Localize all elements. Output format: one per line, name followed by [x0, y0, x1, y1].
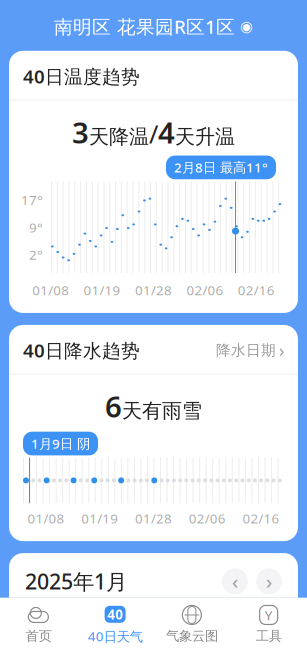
staticText: 2° [29, 246, 43, 263]
button[interactable]: 今天 [134, 641, 173, 651]
staticText: 3 [72, 113, 89, 152]
staticText: › [266, 568, 272, 595]
button[interactable]: 7 [96, 641, 134, 651]
staticText: 40 [107, 605, 123, 623]
button[interactable]: Y [230, 599, 307, 650]
staticText: 01/28 [135, 281, 172, 299]
staticText: 日 [30, 611, 46, 631]
button[interactable]: 10 [211, 641, 249, 651]
staticText: 02/16 [238, 281, 275, 299]
button[interactable]: 下一月 [256, 568, 282, 594]
staticText: 40日降水趋势 [23, 338, 140, 363]
staticText: 气象云图 [166, 628, 218, 644]
staticText: 六 [261, 611, 277, 631]
staticText: ◉ [240, 18, 253, 35]
staticText: 4 [158, 113, 175, 152]
staticText: 首页 [25, 628, 51, 644]
staticText: 降水日期 [216, 341, 276, 359]
staticText: 9 [187, 641, 197, 651]
button[interactable]: 首页 [0, 599, 77, 650]
staticText: 01/08 [32, 281, 69, 299]
button[interactable]: 上一月 [222, 568, 248, 594]
staticText: 2月8日 最高11° [174, 158, 268, 176]
staticText: 17° [21, 191, 43, 209]
staticText: 9° [29, 218, 43, 236]
staticText: 6 [105, 387, 122, 426]
staticText: 1月9日 阴 [31, 435, 90, 452]
staticText: 天有雨雪 [122, 399, 202, 423]
staticText: 四 [184, 611, 200, 631]
button[interactable]: 11 [250, 641, 288, 651]
staticText: 南明区 花果园R区1区 [54, 14, 235, 39]
staticText: 02/16 [243, 509, 280, 527]
staticText: 5 [33, 641, 43, 651]
staticText: 工具 [256, 628, 282, 644]
staticText: 01/28 [135, 509, 172, 527]
staticText: 40日温度趋势 [23, 64, 140, 89]
button[interactable]: 气象云图 [153, 599, 230, 650]
staticText: 今天 [136, 641, 170, 651]
staticText: 01/08 [27, 509, 64, 527]
staticText: 7 [110, 641, 120, 651]
staticText: 01/19 [81, 509, 118, 527]
staticText: › [279, 339, 284, 362]
button[interactable]: 40 [77, 598, 154, 651]
staticText: 二 [107, 611, 123, 631]
staticText: 02/06 [186, 281, 223, 299]
staticText: / [149, 117, 158, 150]
staticText: 40日天气 [88, 627, 143, 645]
button[interactable]: 降水日期 [216, 339, 284, 362]
button[interactable]: 9 [173, 641, 211, 651]
staticText: 天降温 [89, 124, 149, 149]
staticText: 天升温 [175, 124, 235, 149]
staticText: 11 [259, 641, 279, 651]
staticText: 2025年1月 [25, 567, 127, 595]
staticText: ‹ [232, 568, 238, 595]
staticText: Y [265, 606, 273, 624]
button[interactable]: 5 [19, 641, 57, 651]
staticText: 01/19 [84, 281, 121, 299]
staticText: 02/06 [189, 509, 226, 527]
